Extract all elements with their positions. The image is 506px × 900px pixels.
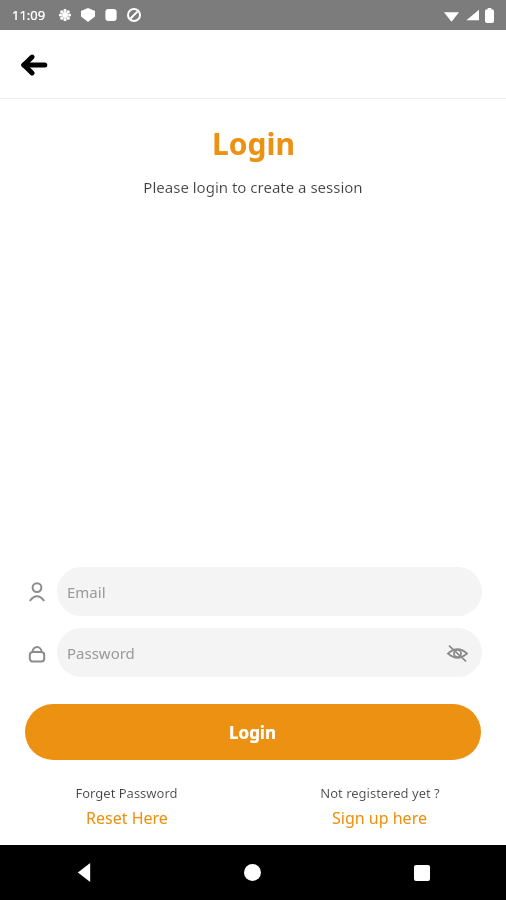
staticText: Password xyxy=(67,643,135,663)
button[interactable]: Toggle password visibility xyxy=(440,636,474,670)
button[interactable]: Back xyxy=(0,845,168,900)
staticText: Please login to create a session xyxy=(143,177,363,197)
button[interactable]: Recent apps xyxy=(337,845,506,900)
staticText: Login xyxy=(229,721,277,744)
staticText: Login xyxy=(212,123,295,164)
button[interactable]: Back xyxy=(12,43,56,87)
button[interactable]: Email xyxy=(0,567,506,616)
staticText: Forget Password xyxy=(75,784,178,802)
button[interactable]: Not registered yet ? xyxy=(253,782,506,831)
staticText: Not registered yet ? xyxy=(320,784,440,802)
button[interactable]: Home xyxy=(168,845,337,900)
staticText: Reset Here xyxy=(86,807,168,829)
button[interactable]: Login xyxy=(25,704,481,760)
staticText: 11:09 xyxy=(12,6,46,24)
button[interactable]: Forget Password xyxy=(0,782,253,831)
staticText: Email xyxy=(67,582,106,602)
staticText: Sign up here xyxy=(332,807,427,829)
button[interactable]: Password xyxy=(0,628,506,677)
